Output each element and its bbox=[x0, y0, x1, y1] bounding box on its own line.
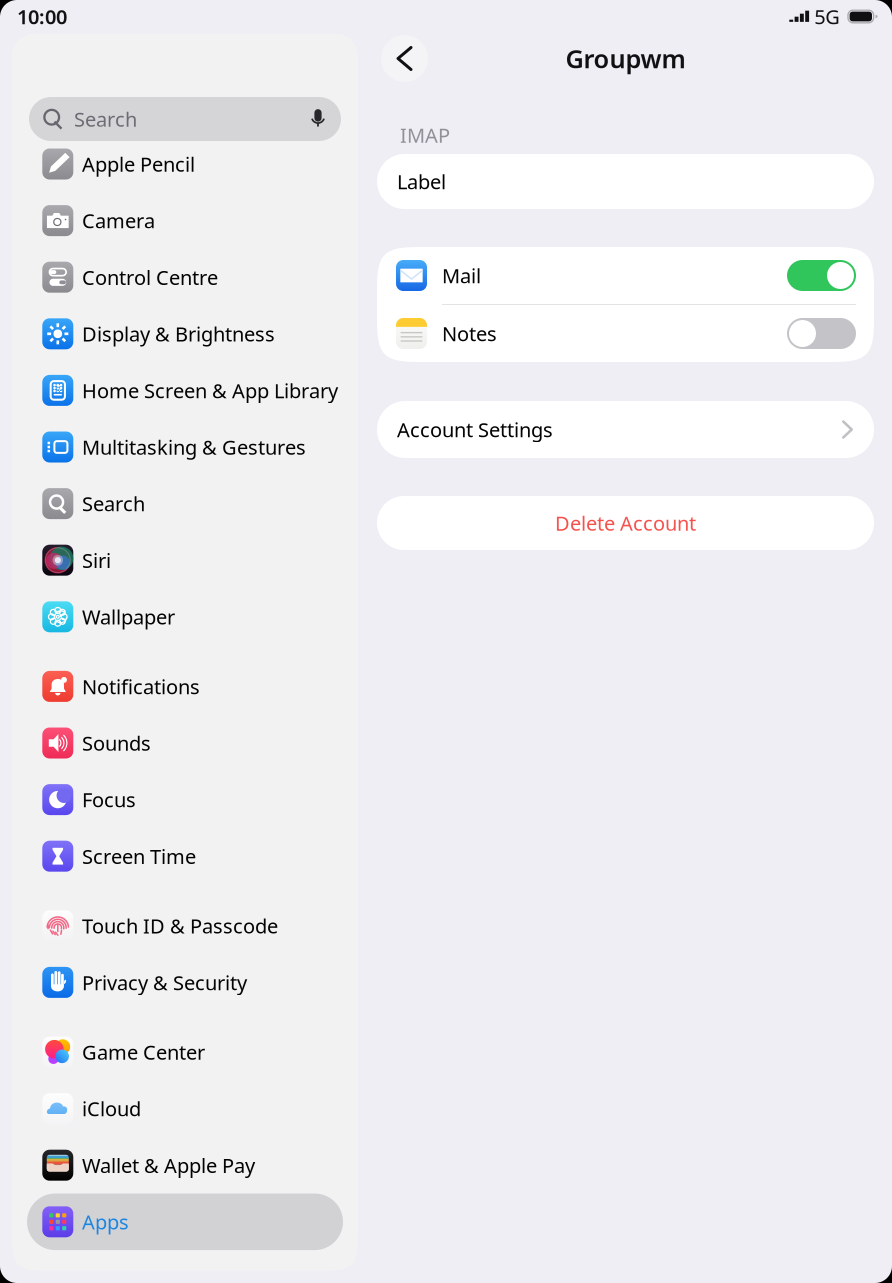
staticText: Display & Brightness bbox=[82, 320, 275, 347]
button[interactable]: Search bbox=[27, 475, 343, 532]
staticText: Groupwm bbox=[565, 42, 685, 75]
button[interactable]: Back bbox=[381, 35, 428, 82]
staticText: Siri bbox=[82, 547, 111, 573]
button[interactable]: Screen Time bbox=[27, 828, 343, 884]
staticText: IMAP bbox=[400, 122, 450, 148]
button[interactable]: On bbox=[787, 260, 856, 291]
staticText: Account Settings bbox=[397, 416, 553, 443]
staticText: 5G bbox=[814, 3, 840, 30]
staticText: Search bbox=[74, 106, 137, 132]
button[interactable]: Siri bbox=[27, 532, 343, 588]
staticText: Apple Pencil bbox=[82, 151, 195, 177]
staticText: Mail bbox=[442, 262, 481, 289]
staticText: Home Screen & App Library bbox=[82, 377, 338, 404]
staticText: Camera bbox=[82, 207, 155, 234]
button[interactable]: Search bbox=[29, 97, 341, 141]
staticText: Wallet & Apple Pay bbox=[82, 1152, 255, 1178]
staticText: Apps bbox=[82, 1208, 129, 1235]
button[interactable]: Control Centre bbox=[27, 249, 343, 305]
staticText: Notifications bbox=[82, 673, 200, 700]
button[interactable]: Privacy & Security bbox=[27, 954, 343, 1011]
staticText: Search bbox=[82, 490, 145, 517]
staticText: Focus bbox=[82, 786, 136, 813]
button[interactable]: Display & Brightness bbox=[27, 305, 343, 362]
button[interactable]: Apps bbox=[27, 1193, 343, 1250]
staticText: Game Center bbox=[82, 1039, 205, 1065]
button[interactable]: iCloud bbox=[27, 1080, 343, 1137]
button[interactable]: Focus bbox=[27, 771, 343, 828]
button[interactable]: Home Screen & App Library bbox=[27, 362, 343, 419]
button[interactable]: Sounds bbox=[27, 715, 343, 771]
button[interactable]: Account Settings bbox=[377, 401, 874, 458]
staticText: iCloud bbox=[82, 1095, 141, 1122]
button[interactable]: Wallpaper bbox=[27, 588, 343, 645]
staticText: Sounds bbox=[82, 730, 151, 756]
staticText: Label bbox=[397, 168, 446, 195]
staticText: Control Centre bbox=[82, 264, 218, 290]
button[interactable]: Camera bbox=[27, 192, 343, 249]
staticText: 10:00 bbox=[17, 3, 67, 30]
button[interactable]: Apple Pencil bbox=[27, 136, 343, 192]
staticText: Touch ID & Passcode bbox=[82, 912, 278, 939]
staticText: Screen Time bbox=[82, 843, 196, 869]
button[interactable]: Touch ID & Passcode bbox=[27, 897, 343, 954]
button[interactable]: Game Center bbox=[27, 1024, 343, 1080]
button[interactable]: Label bbox=[377, 154, 874, 209]
button[interactable]: Off bbox=[787, 318, 856, 349]
button[interactable]: Multitasking & Gestures bbox=[27, 419, 343, 475]
button[interactable]: Delete Account bbox=[377, 496, 874, 550]
staticText: Delete Account bbox=[555, 510, 696, 536]
staticText: Multitasking & Gestures bbox=[82, 434, 306, 460]
staticText: Privacy & Security bbox=[82, 969, 247, 996]
button[interactable]: Wallet & Apple Pay bbox=[27, 1137, 343, 1193]
staticText: Wallpaper bbox=[82, 603, 175, 630]
button[interactable]: Notifications bbox=[27, 658, 343, 715]
staticText: Notes bbox=[442, 320, 497, 347]
